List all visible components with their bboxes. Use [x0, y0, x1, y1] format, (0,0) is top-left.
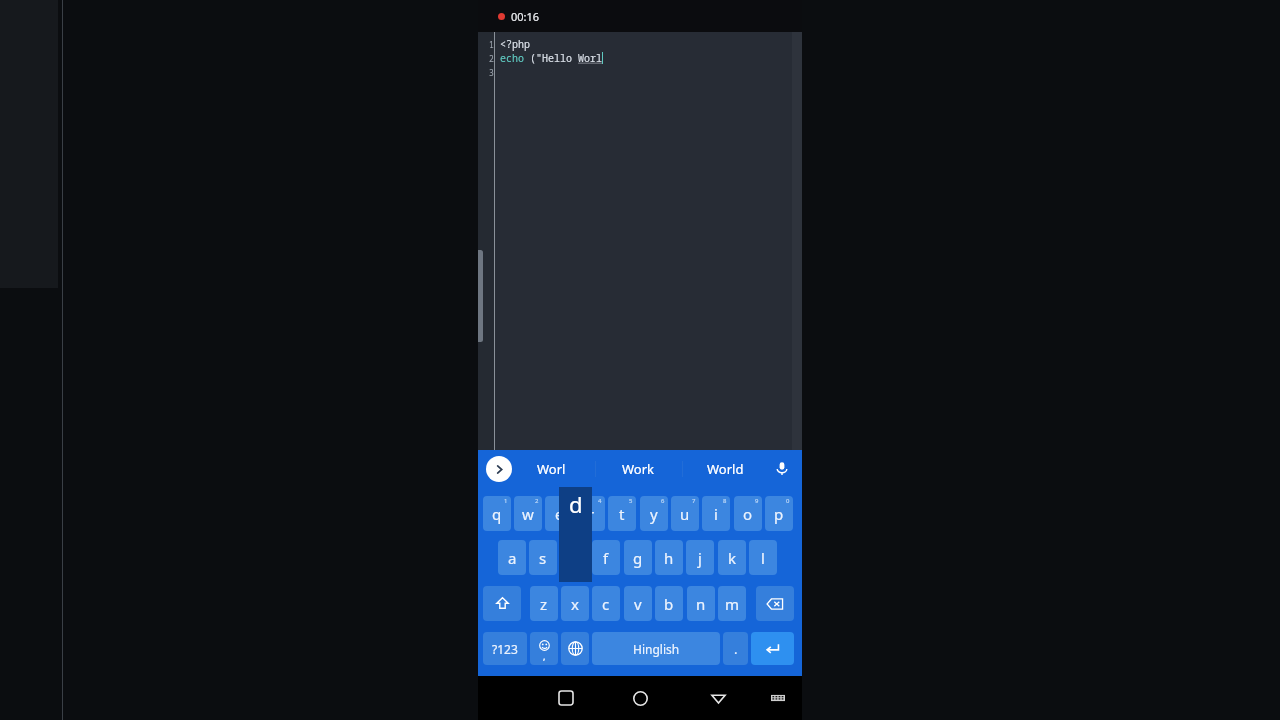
button[interactable]: Hinglish — [592, 632, 720, 665]
staticText: g — [633, 548, 643, 568]
button[interactable]: Emoji — [530, 632, 558, 665]
staticText: Work — [622, 460, 655, 478]
staticText: t — [619, 504, 625, 524]
button[interactable]: v — [624, 586, 652, 621]
button[interactable]: g — [624, 540, 652, 575]
staticText: l — [761, 548, 765, 568]
staticText: 5 — [629, 497, 633, 505]
button[interactable]: Enter — [751, 632, 794, 665]
button[interactable]: World — [683, 450, 767, 488]
staticText: v — [634, 594, 642, 614]
button[interactable]: u — [671, 496, 699, 531]
staticText: 1 — [489, 39, 494, 50]
staticText: u — [680, 504, 690, 524]
button[interactable]: c — [592, 586, 620, 621]
button[interactable]: Hide keyboard — [756, 676, 800, 720]
staticText: p — [774, 504, 784, 524]
staticText: Worl — [537, 460, 566, 478]
button[interactable]: q — [483, 496, 511, 531]
staticText: 7 — [692, 497, 696, 505]
button[interactable]: Drag handle — [478, 250, 483, 342]
staticText: 0 — [786, 497, 790, 505]
button[interactable]: ?123 — [483, 632, 527, 665]
staticText: 4 — [598, 497, 602, 505]
staticText: Worl — [578, 51, 602, 65]
button[interactable]: z — [530, 586, 558, 621]
button[interactable]: Expand toolbar — [486, 456, 512, 482]
staticText: y — [650, 504, 658, 524]
staticText: q — [492, 504, 502, 524]
staticText: 00:16 — [511, 9, 540, 24]
button[interactable]: b — [655, 586, 683, 621]
button[interactable]: e — [545, 496, 573, 531]
staticText: 2 — [535, 497, 539, 505]
button[interactable]: f — [592, 540, 620, 575]
button[interactable]: m — [718, 586, 746, 621]
button[interactable]: Worl — [509, 450, 593, 488]
staticText: o — [743, 504, 753, 524]
button[interactable]: Shift — [483, 586, 521, 621]
staticText: , — [543, 650, 546, 662]
button[interactable]: t — [608, 496, 636, 531]
staticText: 8 — [723, 497, 727, 505]
staticText: f — [603, 548, 609, 568]
staticText: <?php — [500, 37, 530, 51]
button[interactable]: i — [702, 496, 730, 531]
staticText: 1 — [504, 497, 508, 505]
staticText: 2 — [489, 53, 494, 64]
button[interactable]: r — [577, 496, 605, 531]
staticText: n — [696, 594, 706, 614]
staticText: r — [588, 504, 595, 524]
staticText: s — [539, 548, 547, 568]
button[interactable]: n — [687, 586, 715, 621]
button[interactable]: Recent apps — [544, 676, 588, 720]
button[interactable]: s — [529, 540, 557, 575]
staticText: echo — [500, 51, 530, 65]
staticText: e — [555, 504, 564, 524]
staticText: 6 — [661, 497, 665, 505]
staticText: h — [664, 548, 674, 568]
button[interactable]: a — [498, 540, 526, 575]
staticText: World — [707, 460, 744, 478]
staticText: d — [569, 489, 583, 519]
button[interactable]: Home — [618, 676, 662, 720]
staticText: 9 — [755, 497, 759, 505]
staticText: Hinglish — [633, 641, 680, 657]
button[interactable]: y — [640, 496, 668, 531]
staticText: b — [664, 594, 674, 614]
staticText: k — [728, 548, 737, 568]
staticText: w — [522, 504, 534, 524]
staticText: . — [734, 640, 738, 658]
button[interactable]: l — [749, 540, 777, 575]
staticText: ("Hello — [530, 51, 578, 65]
staticText: ?123 — [492, 641, 518, 657]
staticText: 3 — [489, 67, 494, 78]
button[interactable]: o — [734, 496, 762, 531]
staticText: x — [571, 594, 579, 614]
button[interactable]: Back — [696, 676, 740, 720]
staticText: i — [714, 504, 718, 524]
button[interactable]: Change language — [561, 632, 589, 665]
staticText: z — [540, 594, 548, 614]
button[interactable]: h — [655, 540, 683, 575]
button[interactable]: j — [686, 540, 714, 575]
staticText: j — [698, 548, 702, 568]
button[interactable]: Work — [596, 450, 680, 488]
staticText: c — [602, 594, 610, 614]
staticText: m — [725, 594, 740, 614]
button[interactable]: Voice input — [770, 457, 794, 481]
button[interactable]: p — [765, 496, 793, 531]
button[interactable]: w — [514, 496, 542, 531]
button[interactable]: k — [718, 540, 746, 575]
button[interactable]: x — [561, 586, 589, 621]
button[interactable]: . — [723, 632, 748, 665]
button[interactable]: Backspace — [756, 586, 794, 621]
staticText: a — [508, 548, 517, 568]
